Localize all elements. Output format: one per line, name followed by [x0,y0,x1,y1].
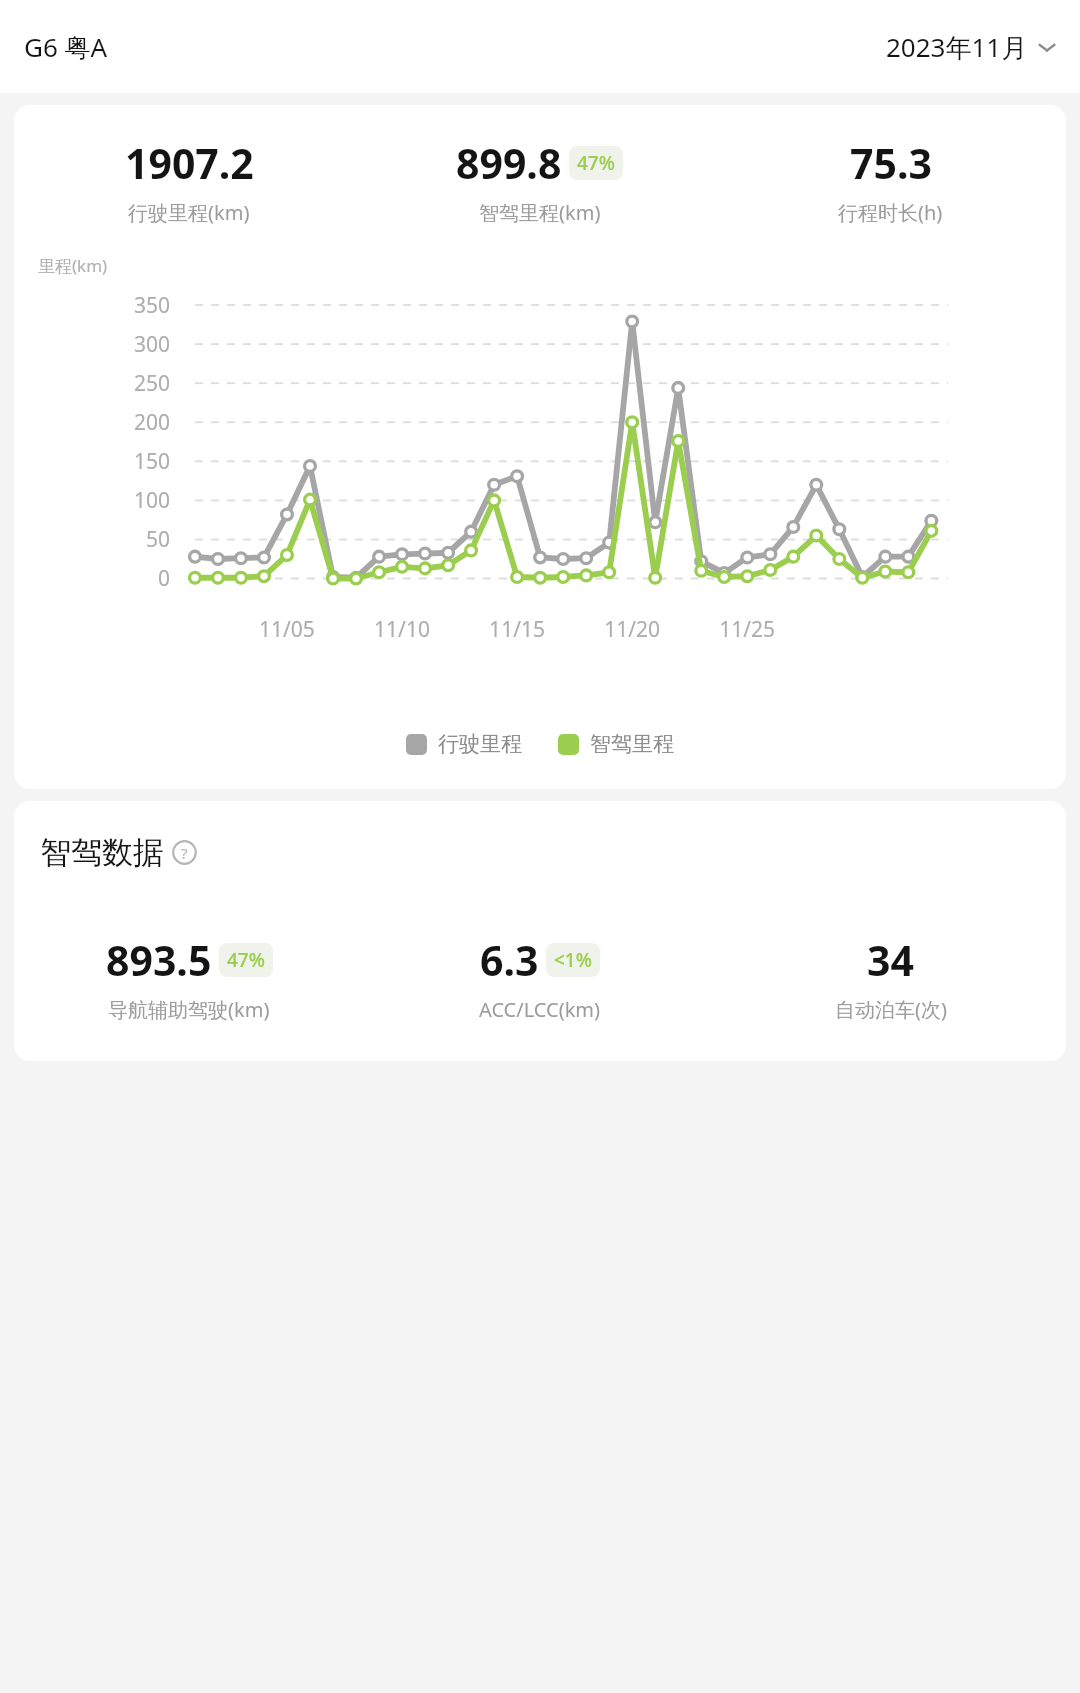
staticText: 1907.2 [125,135,254,191]
staticText: 行驶里程 [438,731,522,757]
button[interactable]: 2023年11月 [882,23,1062,71]
staticText: 自动泊车(次) [835,996,947,1023]
staticText: ACC/LCC(km) [479,996,601,1023]
button[interactable]: 34 [715,930,1066,1025]
staticText: 行驶里程(km) [128,199,250,226]
staticText: 智驾里程(km) [479,199,601,226]
staticText: 行程时长(h) [838,199,943,226]
staticText: 智驾里程 [590,731,674,757]
button[interactable]: 893.5 [14,930,364,1025]
button[interactable]: G6 粤A [20,23,112,71]
staticText: 6.3 [480,932,539,988]
staticText: 893.5 [106,932,212,988]
staticText: 47% [577,150,615,176]
staticText: 导航辅助驾驶(km) [108,996,270,1023]
staticText: 34 [867,932,914,988]
staticText: <1% [554,947,592,973]
staticText: 里程(km) [38,254,108,277]
staticText: G6 粤A [24,29,108,65]
staticText: 75.3 [850,135,932,191]
staticText: 智驾数据 [40,833,164,872]
staticText: 2023年11月 [886,29,1028,65]
button[interactable]: 行驶里程 [404,729,524,759]
button[interactable]: 1907.2 [14,133,364,228]
staticText: 47% [227,947,265,973]
button[interactable]: 899.8 [364,133,715,228]
button[interactable]: 6.3 [364,930,715,1025]
button[interactable]: About smart driving data [172,840,197,865]
button[interactable]: 智驾里程 [556,729,676,759]
staticText: ? [181,843,188,863]
other: Select month [1036,36,1058,58]
staticText: 899.8 [456,135,562,191]
button[interactable]: 75.3 [715,133,1066,228]
